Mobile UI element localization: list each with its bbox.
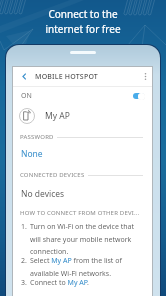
staticText: Connect to the <box>48 7 118 21</box>
button[interactable]: My AP <box>13 104 152 128</box>
button[interactable]: More options <box>139 67 152 86</box>
staticText: MOBILE HOTSPOT <box>35 72 99 82</box>
staticText: HOW TO CONNECT FROM OTHER DEVI... <box>20 209 140 217</box>
staticText: None <box>21 148 43 160</box>
staticText: internet for free <box>45 22 121 36</box>
staticText: ON <box>21 91 32 101</box>
staticText: PASSWORD <box>20 133 54 141</box>
staticText: 3. <box>21 278 27 288</box>
staticText: No devices <box>21 188 65 200</box>
button[interactable]: None <box>13 148 152 160</box>
staticText: 2. <box>21 256 27 266</box>
staticText: My AP <box>45 110 70 122</box>
staticText: Select My AP from the list of available … <box>30 256 143 278</box>
button[interactable]: ON <box>13 86 152 105</box>
staticText: 1. <box>21 222 27 232</box>
staticText: Connect to My AP. <box>30 278 89 288</box>
staticText: Turn on Wi-Fi on the device that will sh… <box>30 222 143 256</box>
staticText: CONNECTED DEVICES <box>20 171 85 179</box>
button[interactable]: Back <box>13 67 35 86</box>
button[interactable]: Back <box>13 67 152 86</box>
